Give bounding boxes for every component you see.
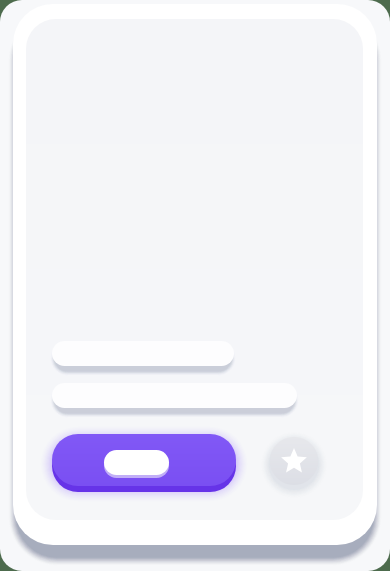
- button[interactable]: Favorite: [270, 437, 318, 485]
- button[interactable]: Subtitle placeholder: [52, 383, 297, 408]
- button[interactable]: Title placeholder: [52, 341, 234, 366]
- button[interactable]: Primary action: [52, 434, 236, 486]
